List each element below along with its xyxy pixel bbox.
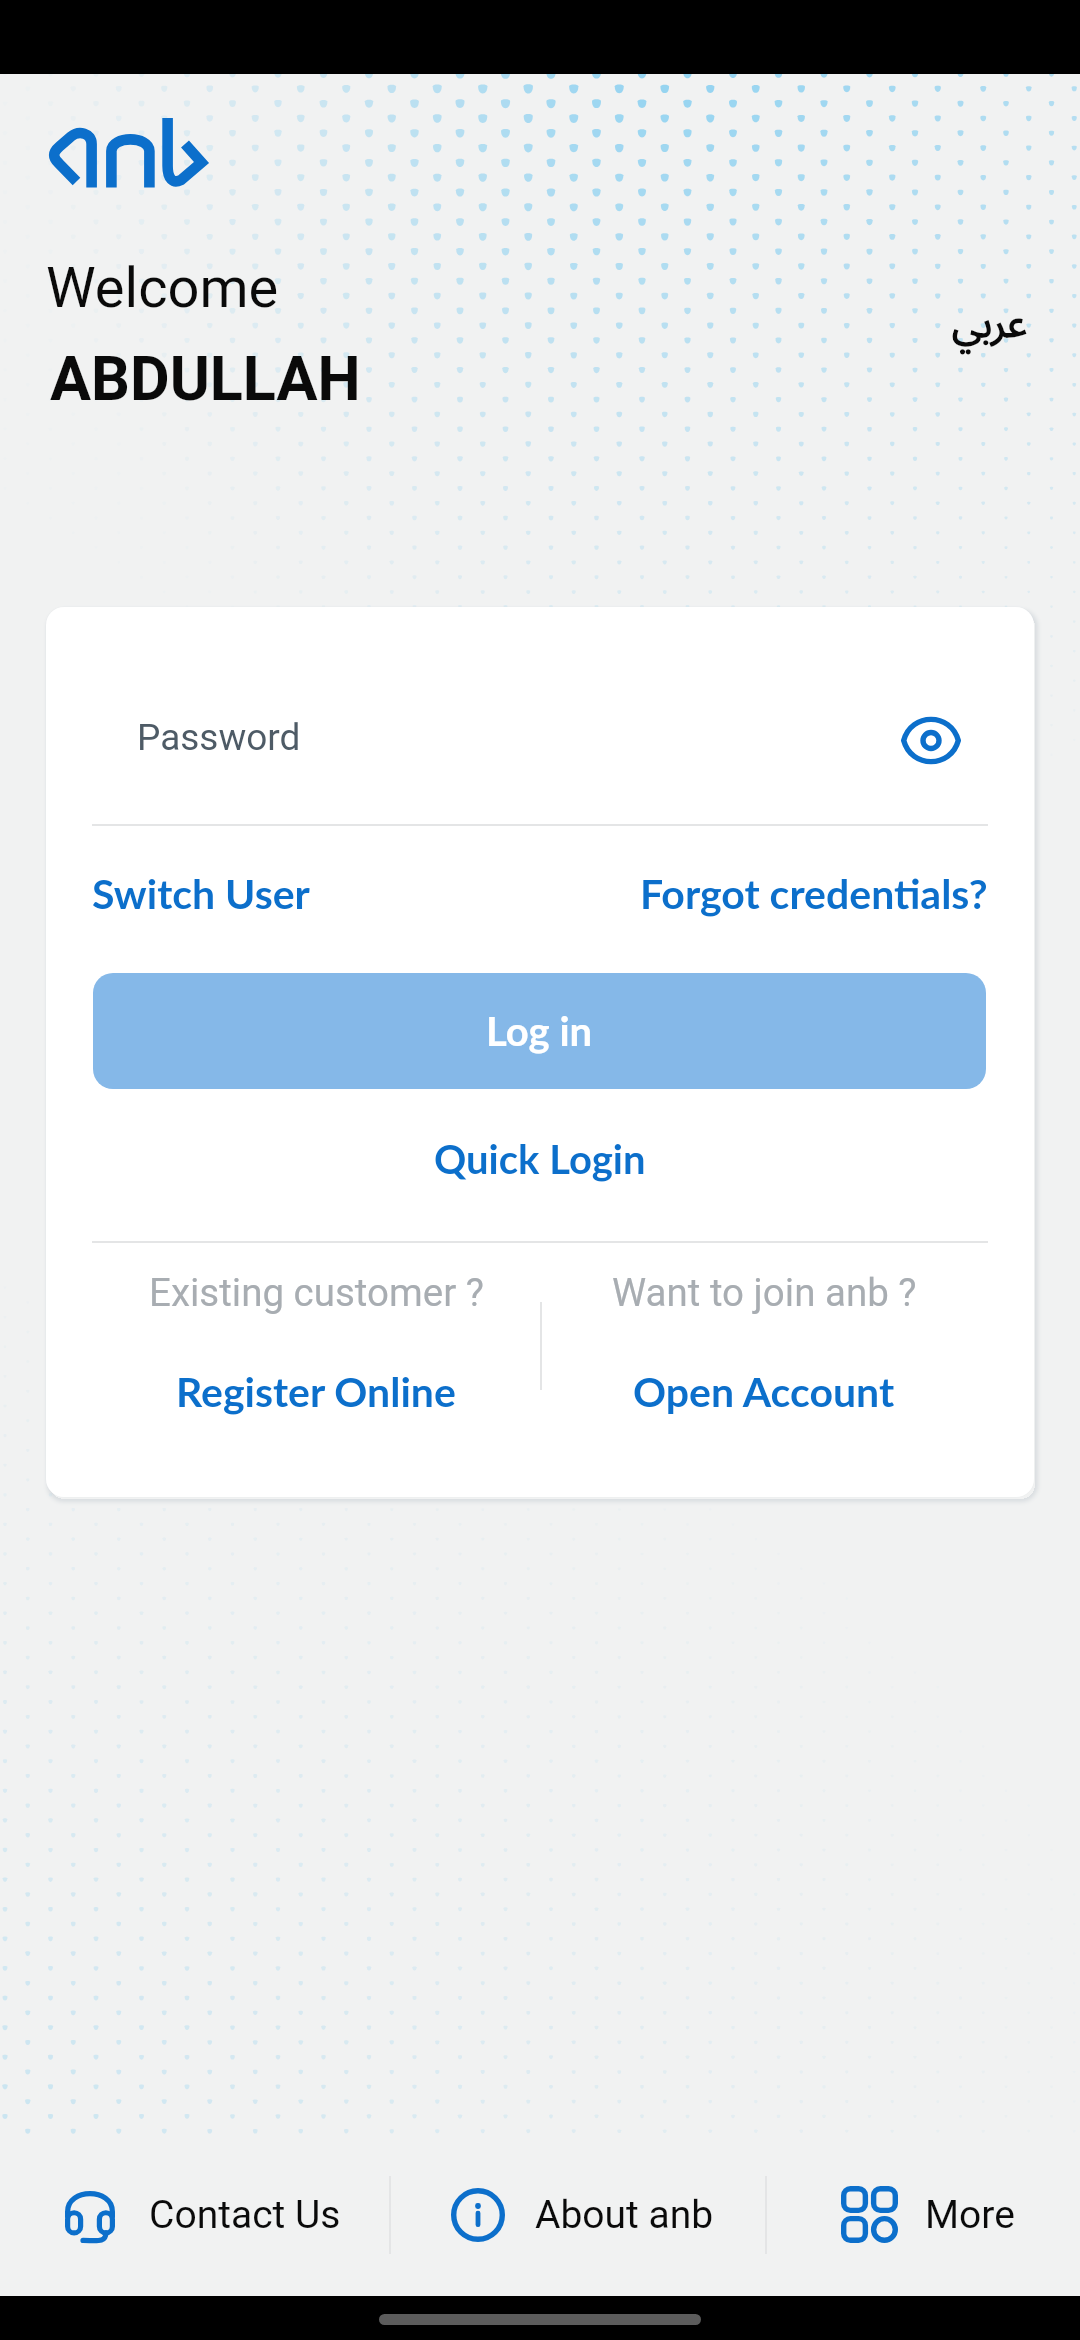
button[interactable]: About anb (391, 2133, 765, 2296)
staticText: Contact Us (149, 2192, 341, 2238)
staticText: ABDULLAH (50, 343, 361, 414)
button[interactable]: Open Account (633, 1367, 895, 1416)
staticText: Want to join anb ? (612, 1270, 917, 1315)
button[interactable]: Log in (93, 973, 986, 1089)
button[interactable]: Register Online (176, 1367, 456, 1416)
button[interactable]: عربي (944, 278, 1035, 370)
staticText: Welcome (46, 255, 279, 321)
staticText: عربي (952, 282, 1027, 366)
button[interactable]: More (767, 2133, 1080, 2296)
staticText: Register Online (176, 1367, 456, 1416)
staticText: About anb (535, 2192, 714, 2238)
button[interactable]: Show password (884, 703, 978, 777)
button[interactable]: Switch User (92, 869, 310, 918)
staticText: Forgot credentials? (640, 869, 988, 918)
button[interactable]: Forgot credentials? (640, 869, 988, 918)
button[interactable]: Contact Us (0, 2133, 389, 2296)
staticText: Switch User (92, 869, 310, 918)
staticText: Log in (486, 1007, 593, 1055)
staticText: More (925, 2192, 1015, 2238)
staticText: Quick Login (434, 1135, 646, 1183)
staticText: Open Account (633, 1367, 895, 1416)
staticText: Password (137, 716, 301, 759)
button[interactable]: Quick Login (92, 1135, 988, 1183)
staticText: Existing customer ? (149, 1270, 484, 1315)
